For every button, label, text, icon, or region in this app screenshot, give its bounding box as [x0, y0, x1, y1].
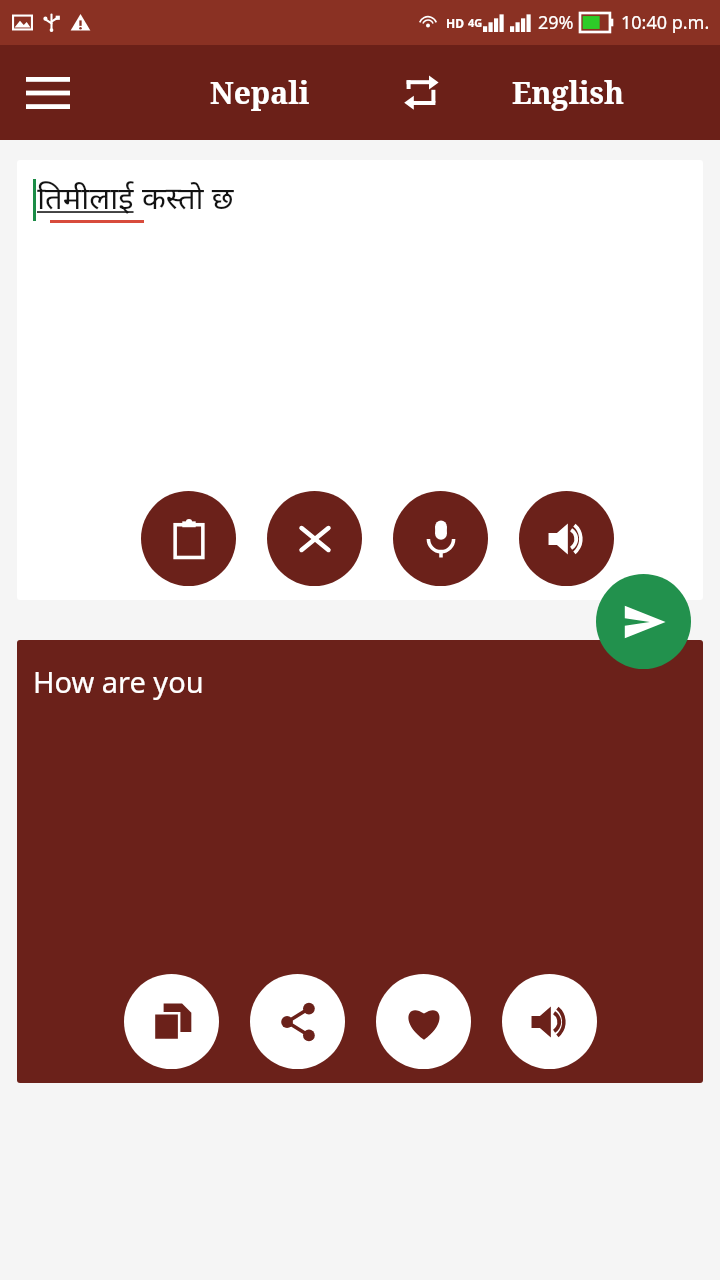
button[interactable]: Menu	[14, 59, 82, 127]
button[interactable]: Paste	[141, 491, 236, 586]
staticText: English	[512, 72, 624, 113]
staticText: How are you	[33, 662, 204, 701]
button[interactable]: Send	[596, 574, 691, 669]
button[interactable]: Share	[250, 974, 345, 1069]
button[interactable]: Voice input	[393, 491, 488, 586]
staticText: HD	[446, 15, 464, 31]
button[interactable]: Nepali	[210, 72, 310, 113]
button[interactable]: Copy	[124, 974, 219, 1069]
button[interactable]: Swap languages	[386, 58, 456, 128]
staticText: 29%	[538, 10, 574, 35]
staticText: कस्तो छ	[134, 176, 234, 218]
button[interactable]: Clear	[267, 491, 362, 586]
button[interactable]: Speak	[502, 974, 597, 1069]
staticText: 10:40 p.m.	[621, 10, 710, 35]
button[interactable]: Favourite	[376, 974, 471, 1069]
button[interactable]: English	[512, 72, 624, 113]
staticText: तिमीलाई	[37, 176, 134, 218]
button[interactable]: Speak	[519, 491, 614, 586]
staticText: Nepali	[210, 72, 310, 113]
staticText: 4G	[468, 15, 483, 30]
